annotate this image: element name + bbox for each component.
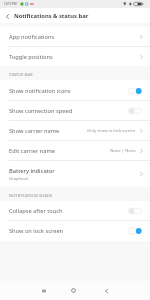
button[interactable]: Show connection speed [128, 108, 142, 114]
button[interactable]: Recent apps [36, 283, 51, 298]
staticText: Battery indicator [9, 167, 55, 175]
button[interactable]: Battery indicator [0, 161, 150, 187]
staticText: Show notification icons [9, 87, 71, 95]
button[interactable]: Collapse after touch [0, 201, 150, 221]
button[interactable]: App notifications [0, 27, 150, 47]
staticText: Toggle positions [9, 53, 53, 61]
staticText: Show connection speed [9, 107, 73, 115]
staticText: Show carrier name [9, 127, 60, 135]
button[interactable]: Edit carrier name [0, 141, 150, 161]
button[interactable]: Collapse after touch [128, 208, 142, 214]
button[interactable]: Show notification icons [0, 80, 150, 101]
button[interactable]: Toggle positions [0, 47, 150, 66]
staticText: STATUS BAR [9, 72, 33, 78]
staticText: None | None [110, 148, 136, 154]
staticText: Only show in lock screen [87, 128, 136, 134]
staticText: Collapse after touch [9, 207, 63, 215]
staticText: Graphical [9, 176, 28, 182]
staticText: App notifications [9, 33, 55, 41]
staticText: Show on lock screen [9, 227, 64, 235]
button[interactable]: Back [0, 9, 14, 23]
button[interactable]: Show on lock screen [128, 228, 142, 234]
button[interactable]: Home [66, 283, 81, 298]
staticText: NOTIFICATION SHADE [9, 193, 53, 199]
button[interactable]: Show notification icons [128, 88, 142, 94]
staticText: Notifications & status bar [14, 12, 89, 20]
staticText: 10:10 PM [4, 2, 17, 6]
button[interactable]: Back [99, 283, 114, 298]
button[interactable]: Show connection speed [0, 101, 150, 121]
staticText: Edit carrier name [9, 147, 56, 155]
button[interactable]: Show carrier name [0, 121, 150, 141]
button[interactable]: Show on lock screen [0, 221, 150, 241]
